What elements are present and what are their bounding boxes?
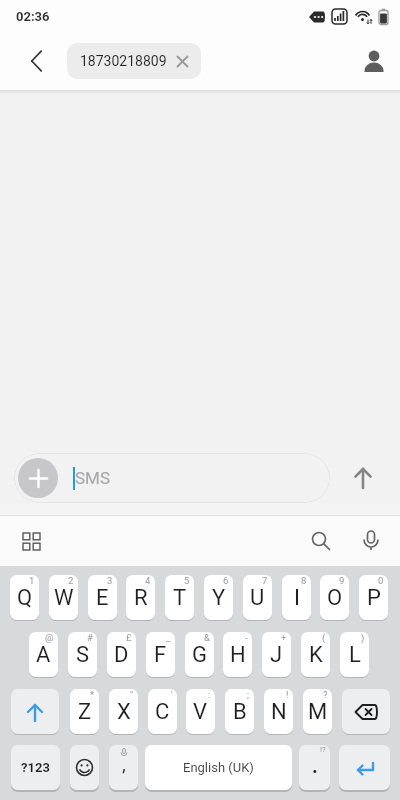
button[interactable]: S <box>68 632 97 677</box>
button[interactable]: C <box>148 689 177 734</box>
button[interactable] <box>339 745 390 790</box>
staticText: R <box>134 585 148 611</box>
button[interactable]: U <box>243 575 272 620</box>
staticText: J <box>270 642 283 668</box>
button[interactable]: A <box>29 632 58 677</box>
staticText: . <box>312 754 318 777</box>
staticText: O <box>327 585 343 611</box>
staticText: English (UK) <box>183 760 254 775</box>
staticText: - <box>245 632 248 643</box>
button[interactable]: V <box>186 689 215 734</box>
button[interactable]: N <box>264 689 293 734</box>
staticText: 2 <box>68 575 74 586</box>
staticText: ?123 <box>21 760 50 775</box>
staticText: Q <box>17 585 33 611</box>
button[interactable]: X <box>109 689 138 734</box>
staticText: 18730218809 <box>80 53 167 69</box>
staticText: X <box>117 699 131 725</box>
button[interactable]: K <box>301 632 330 677</box>
staticText: 02:36 <box>16 9 50 24</box>
button[interactable]: L <box>340 632 369 677</box>
button[interactable]: English (UK) <box>145 745 292 790</box>
staticText: 8 <box>301 575 307 586</box>
button[interactable]: W <box>49 575 78 620</box>
button[interactable]: B <box>225 689 254 734</box>
button[interactable]: J <box>262 632 291 677</box>
staticText: N <box>271 699 287 725</box>
staticText: * <box>90 689 95 700</box>
button[interactable]: O <box>320 575 349 620</box>
staticText: : <box>208 689 211 700</box>
staticText: 1 <box>29 575 35 586</box>
button[interactable]: G <box>185 632 214 677</box>
button[interactable] <box>18 458 58 498</box>
staticText: A <box>36 642 51 668</box>
staticText: G <box>192 642 207 668</box>
staticText: S <box>76 642 90 668</box>
button[interactable] <box>342 689 390 734</box>
button[interactable]: I <box>282 575 311 620</box>
staticText: C <box>155 699 170 725</box>
button[interactable] <box>359 46 389 76</box>
staticText: 3 <box>107 575 113 586</box>
button[interactable]: , <box>109 745 138 790</box>
staticText: ' <box>171 689 173 700</box>
button[interactable]: H <box>223 632 252 677</box>
button[interactable]: Q <box>10 575 39 620</box>
staticText: + <box>281 632 287 643</box>
staticText: £ <box>126 632 132 643</box>
button[interactable]: M <box>303 689 332 734</box>
staticText: Z <box>78 699 92 725</box>
staticText: 0 <box>378 575 384 586</box>
staticText: Y <box>212 585 226 611</box>
staticText: D <box>114 642 129 668</box>
staticText: B <box>233 699 247 725</box>
staticText: U <box>250 585 265 611</box>
staticText: T <box>173 585 187 611</box>
button[interactable]: Z <box>70 689 99 734</box>
button[interactable] <box>70 745 99 790</box>
staticText: 7 <box>262 575 268 586</box>
button[interactable]: . <box>299 745 330 790</box>
button[interactable] <box>305 525 337 557</box>
staticText: P <box>367 585 381 611</box>
button[interactable]: T <box>165 575 194 620</box>
staticText: F <box>154 642 167 668</box>
staticText: _ <box>166 632 171 643</box>
button[interactable]: E <box>88 575 117 620</box>
button[interactable]: P <box>359 575 388 620</box>
staticText: SMS <box>75 468 111 488</box>
button[interactable]: R <box>126 575 155 620</box>
staticText: K <box>309 642 323 668</box>
staticText: " <box>130 689 134 700</box>
staticText: @ <box>45 632 54 643</box>
button[interactable]: F <box>146 632 175 677</box>
staticText: M <box>308 699 328 725</box>
staticText: 4 <box>145 575 151 586</box>
button[interactable] <box>11 689 59 734</box>
button[interactable]: 18730218809 <box>67 43 201 79</box>
staticText: & <box>204 632 210 643</box>
staticText: # <box>87 632 93 643</box>
staticText: H <box>230 642 246 668</box>
staticText: !? <box>320 745 326 754</box>
staticText: I <box>294 585 300 611</box>
staticText: 5 <box>184 575 190 586</box>
button[interactable]: SMS <box>14 453 330 503</box>
button[interactable] <box>20 45 52 77</box>
staticText: 6 <box>223 575 229 586</box>
staticText: ? <box>323 689 328 700</box>
staticText: ; <box>247 689 250 700</box>
button[interactable] <box>355 525 387 557</box>
staticText: ) <box>361 632 365 643</box>
staticText: V <box>193 699 208 725</box>
button[interactable]: Y <box>204 575 233 620</box>
button[interactable] <box>15 525 47 557</box>
staticText: , <box>122 753 126 775</box>
staticText: ( <box>322 632 326 643</box>
button[interactable] <box>351 466 375 490</box>
staticText: 9 <box>339 575 345 586</box>
button[interactable]: ?123 <box>11 745 60 790</box>
button[interactable]: D <box>107 632 136 677</box>
staticText: E <box>96 585 109 611</box>
